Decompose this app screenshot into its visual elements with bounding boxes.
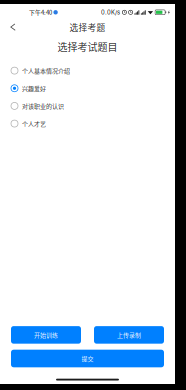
staticText: 个人才艺 [22, 119, 46, 128]
button[interactable]: Back [0, 18, 26, 36]
button[interactable]: 上传录制 [94, 326, 164, 344]
staticText: 上传录制 [117, 331, 141, 339]
button[interactable]: 兴趣爱好 [0, 79, 175, 97]
button[interactable]: 开始训练 [11, 326, 81, 344]
staticText: 0.0K/s [101, 9, 120, 16]
staticText: 提交 [81, 354, 93, 363]
button[interactable]: 个人才艺 [0, 115, 175, 132]
button[interactable]: 对该职业的认识 [0, 97, 175, 115]
staticText: 选择考试题目 [57, 39, 117, 54]
staticText: 兴趣爱好 [22, 84, 46, 93]
staticText: 对该职业的认识 [22, 102, 64, 110]
staticText: 下午4:40 [29, 8, 52, 17]
button[interactable]: 提交 [11, 350, 164, 367]
staticText: 个人基本情况介绍 [22, 66, 70, 75]
button[interactable]: 个人基本情况介绍 [0, 62, 175, 79]
staticText: 开始训练 [34, 331, 58, 339]
staticText: 选择考题 [69, 21, 105, 33]
